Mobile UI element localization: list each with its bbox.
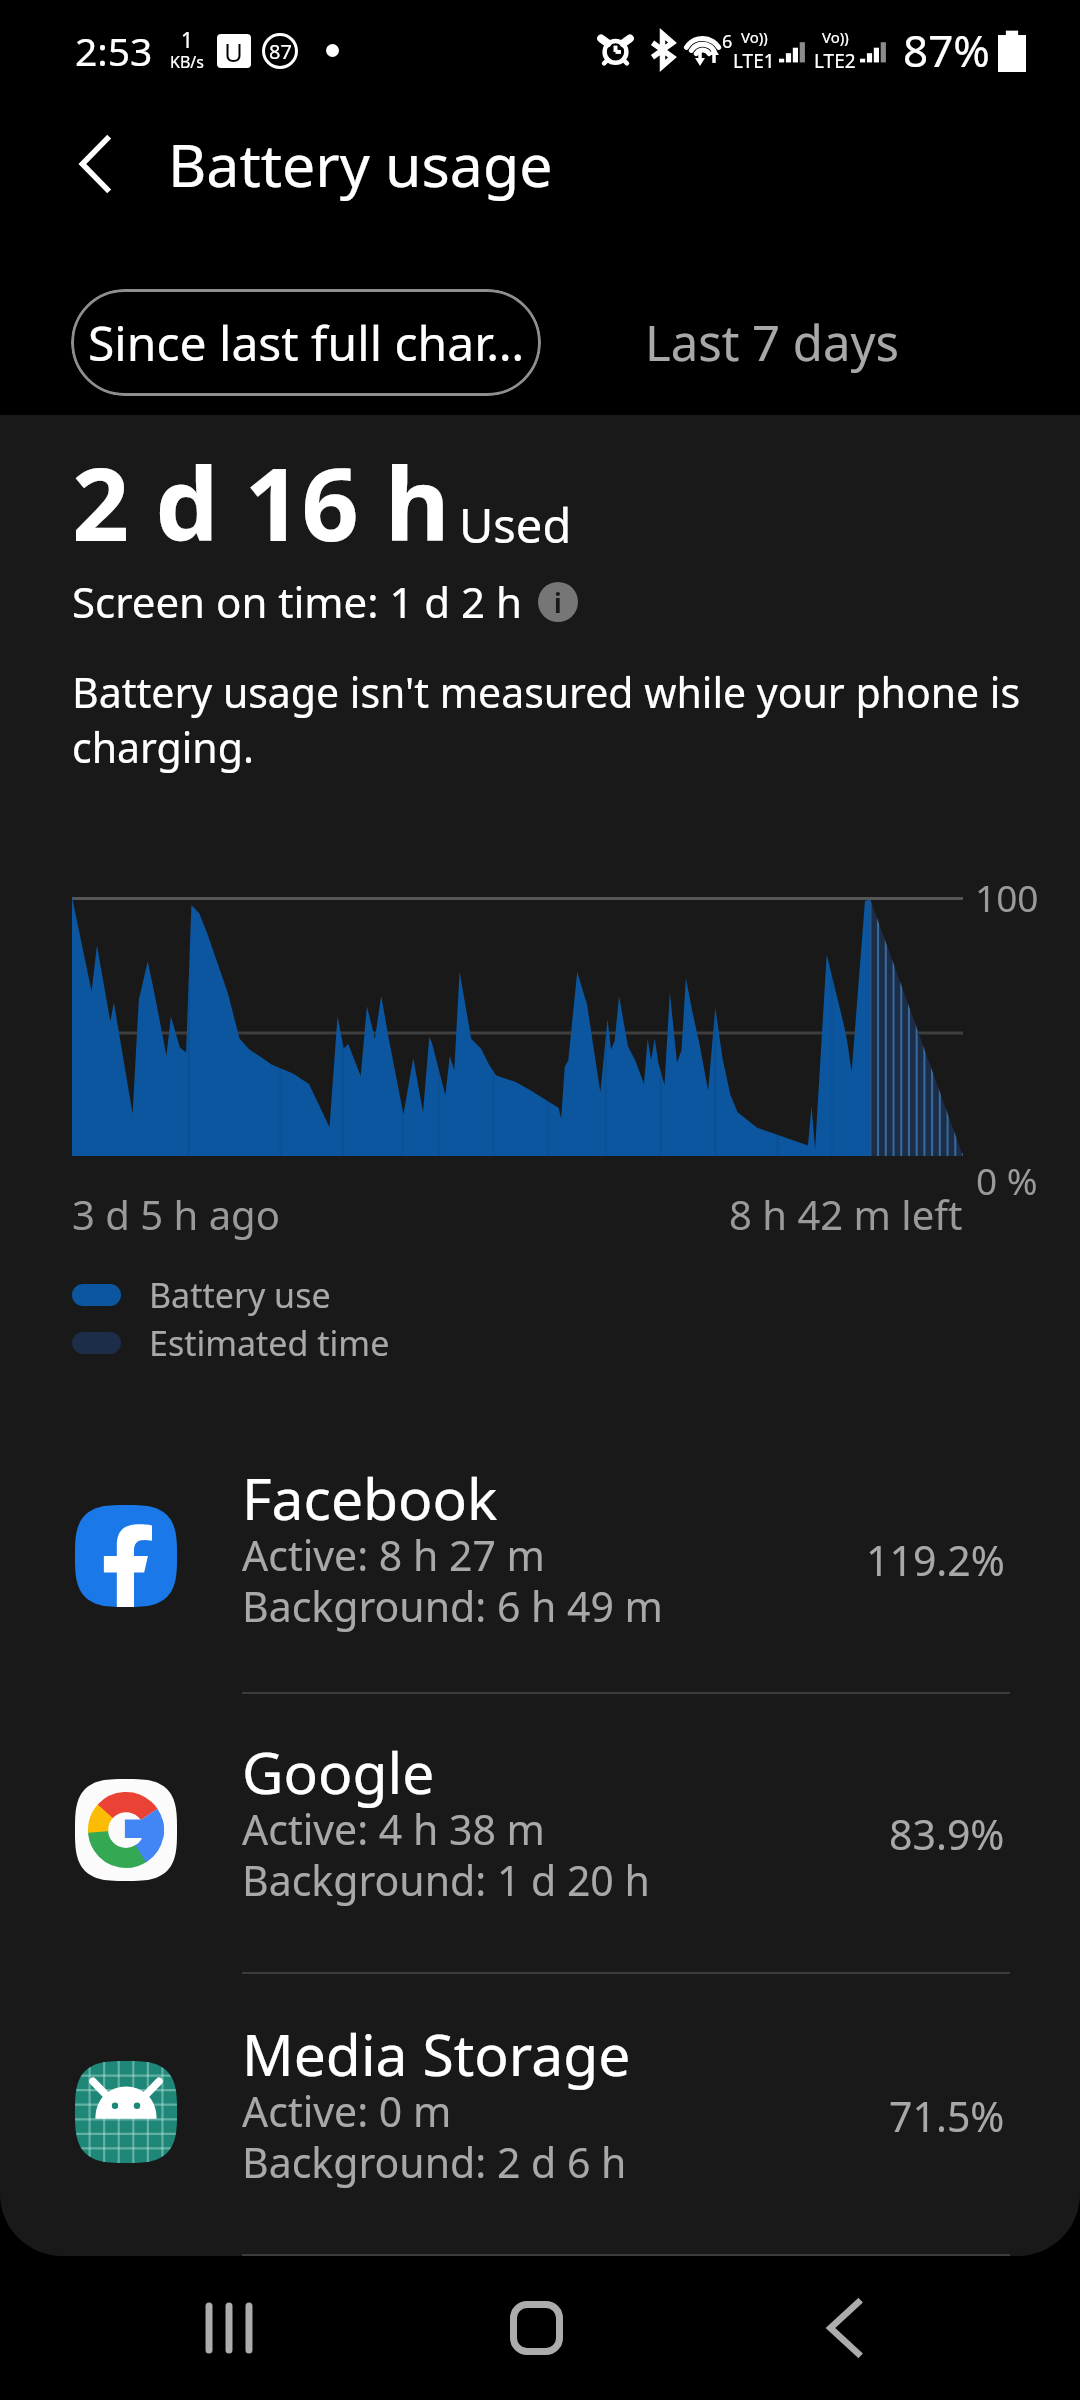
- staticText: Background: 1 d 20 h: [242, 1852, 650, 1908]
- staticText: 1: [181, 26, 194, 55]
- staticText: Estimated time: [149, 1320, 390, 1366]
- staticText: Active: 4 h 38 m: [242, 1801, 545, 1857]
- button[interactable]: Media Storage: [0, 2009, 1080, 2256]
- button[interactable]: Google: [0, 1727, 1080, 2017]
- staticText: Active: 0 m: [242, 2083, 452, 2139]
- staticText: 2 d 16 h: [72, 434, 450, 570]
- staticText: Used: [459, 493, 572, 557]
- staticText: Active: 8 h 27 m: [242, 1527, 545, 1583]
- staticText: LTE2: [814, 48, 856, 74]
- staticText: 6: [722, 29, 733, 54]
- staticText: 0 %: [976, 1155, 1038, 1205]
- staticText: Battery use: [149, 1272, 331, 1318]
- button[interactable]: More information: [538, 582, 578, 622]
- button[interactable]: Navigate up: [38, 108, 150, 220]
- staticText: Background: 6 h 49 m: [242, 1578, 663, 1634]
- staticText: 119.2%: [866, 1532, 1005, 1588]
- staticText: Facebook: [242, 1459, 498, 1537]
- button[interactable]: Last 7 days: [617, 289, 927, 396]
- staticText: Battery usage isn't measured while your …: [72, 664, 1072, 775]
- staticText: Since last full char…: [88, 310, 525, 375]
- staticText: Battery usage: [168, 124, 553, 204]
- staticText: 3 d 5 h ago: [72, 1187, 280, 1241]
- staticText: 87: [269, 38, 292, 65]
- staticText: 8 h 42 m left: [729, 1187, 963, 1241]
- staticText: 83.9%: [889, 1806, 1005, 1862]
- staticText: Screen on time: 1 d 2 h: [72, 573, 522, 630]
- staticText: Vo)): [822, 27, 849, 47]
- button[interactable]: Home: [461, 2256, 611, 2400]
- staticText: Google: [242, 1733, 435, 1811]
- button[interactable]: Facebook: [0, 1453, 1080, 1743]
- staticText: LTE1: [733, 48, 775, 74]
- staticText: Background: 2 d 6 h: [242, 2134, 627, 2190]
- button[interactable]: Since last full char…: [71, 289, 541, 396]
- staticText: Vo)): [741, 27, 768, 47]
- staticText: 2:53: [75, 24, 153, 77]
- staticText: 100: [975, 872, 1039, 922]
- staticText: Media Storage: [242, 2015, 631, 2093]
- staticText: Last 7 days: [645, 309, 899, 376]
- button[interactable]: Recents: [154, 2256, 304, 2400]
- staticText: i: [554, 585, 562, 620]
- staticText: KB/s: [170, 51, 204, 73]
- button[interactable]: Back: [769, 2256, 919, 2400]
- staticText: 71.5%: [889, 2088, 1005, 2144]
- staticText: U: [224, 34, 244, 68]
- staticText: 87%: [903, 20, 990, 80]
